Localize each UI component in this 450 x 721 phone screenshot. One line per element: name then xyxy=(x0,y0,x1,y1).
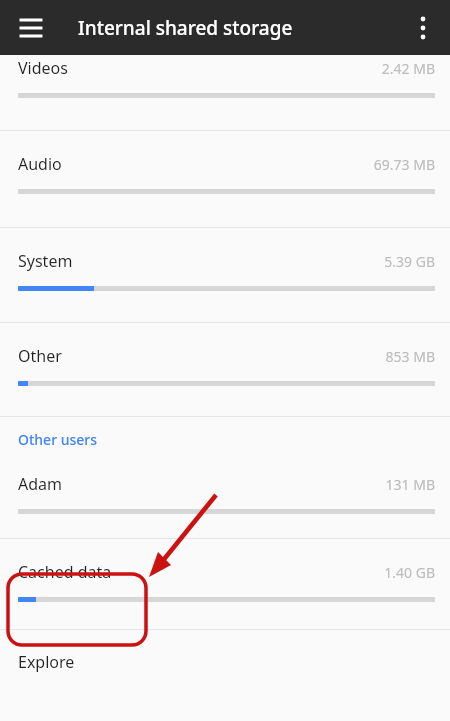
staticText: System xyxy=(18,250,384,272)
staticText: 131 MB xyxy=(385,475,435,494)
staticText: Audio xyxy=(18,153,373,175)
staticText: Adam xyxy=(18,473,385,495)
button[interactable]: Videos xyxy=(0,55,450,131)
button[interactable]: Audio xyxy=(0,131,450,228)
staticText: 1.40 GB xyxy=(384,563,435,582)
staticText: Videos xyxy=(18,57,381,79)
button[interactable]: Other xyxy=(0,323,450,417)
button[interactable]: Cached data xyxy=(0,539,450,630)
staticText: 69.73 MB xyxy=(373,155,435,174)
staticText: Internal shared storage xyxy=(78,15,293,41)
button[interactable]: More options xyxy=(406,11,440,45)
button[interactable]: Adam xyxy=(0,461,450,539)
staticText: Explore xyxy=(18,651,75,673)
staticText: 853 MB xyxy=(385,347,435,366)
staticText: 2.42 MB xyxy=(381,59,435,78)
button[interactable]: Open navigation menu xyxy=(14,11,48,45)
button[interactable]: Explore xyxy=(0,630,450,694)
button[interactable]: System xyxy=(0,228,450,323)
staticText: 5.39 GB xyxy=(384,252,435,271)
staticText: Other xyxy=(18,345,385,367)
staticText: Other users xyxy=(18,430,98,449)
staticText: Cached data xyxy=(18,561,384,583)
